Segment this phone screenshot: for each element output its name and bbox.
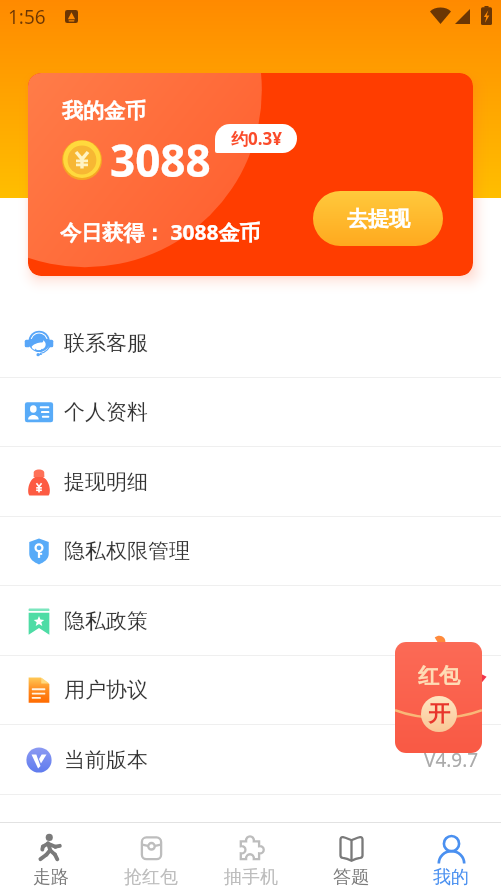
button[interactable]: 隐私政策: [0, 586, 501, 655]
button[interactable]: 抢红包: [101, 823, 201, 890]
button[interactable]: 去提现: [313, 191, 443, 246]
button[interactable]: 我的金币: [28, 73, 473, 276]
button[interactable]: 红包: [392, 636, 488, 758]
button[interactable]: 答题: [301, 823, 401, 890]
staticText: 走路: [33, 866, 69, 889]
staticText: 红包: [418, 663, 460, 689]
staticText: 3088: [110, 130, 211, 190]
button[interactable]: 提现明细: [0, 447, 501, 516]
staticText: 答题: [333, 866, 369, 889]
staticText: 隐私权限管理: [64, 538, 190, 564]
staticText: 我的: [433, 866, 469, 889]
staticText: 联系客服: [64, 330, 148, 356]
button[interactable]: 联系客服: [0, 308, 501, 377]
staticText: V4.9.7: [424, 747, 479, 773]
button[interactable]: 当前版本: [0, 725, 501, 794]
button[interactable]: 个人资料: [0, 378, 501, 446]
staticText: 用户协议: [64, 677, 148, 703]
staticText: 抢红包: [124, 866, 178, 889]
staticText: 提现明细: [64, 469, 148, 495]
staticText: 开: [428, 700, 450, 728]
button[interactable]: 隐私权限管理: [0, 517, 501, 585]
staticText: 我的金币: [62, 98, 146, 124]
button[interactable]: 用户协议: [0, 656, 501, 724]
staticText: 隐私政策: [64, 608, 148, 634]
staticText: 今日获得： 3088金币: [60, 218, 261, 247]
staticText: 当前版本: [64, 747, 148, 773]
button[interactable]: 走路: [0, 823, 101, 890]
staticText: 个人资料: [64, 399, 148, 425]
staticText: 约0.3¥: [231, 127, 282, 150]
button[interactable]: 抽手机: [201, 823, 301, 890]
button[interactable]: 我的: [401, 823, 501, 890]
staticText: 1:56: [8, 4, 46, 30]
staticText: 抽手机: [224, 866, 278, 889]
staticText: 去提现: [347, 206, 410, 232]
